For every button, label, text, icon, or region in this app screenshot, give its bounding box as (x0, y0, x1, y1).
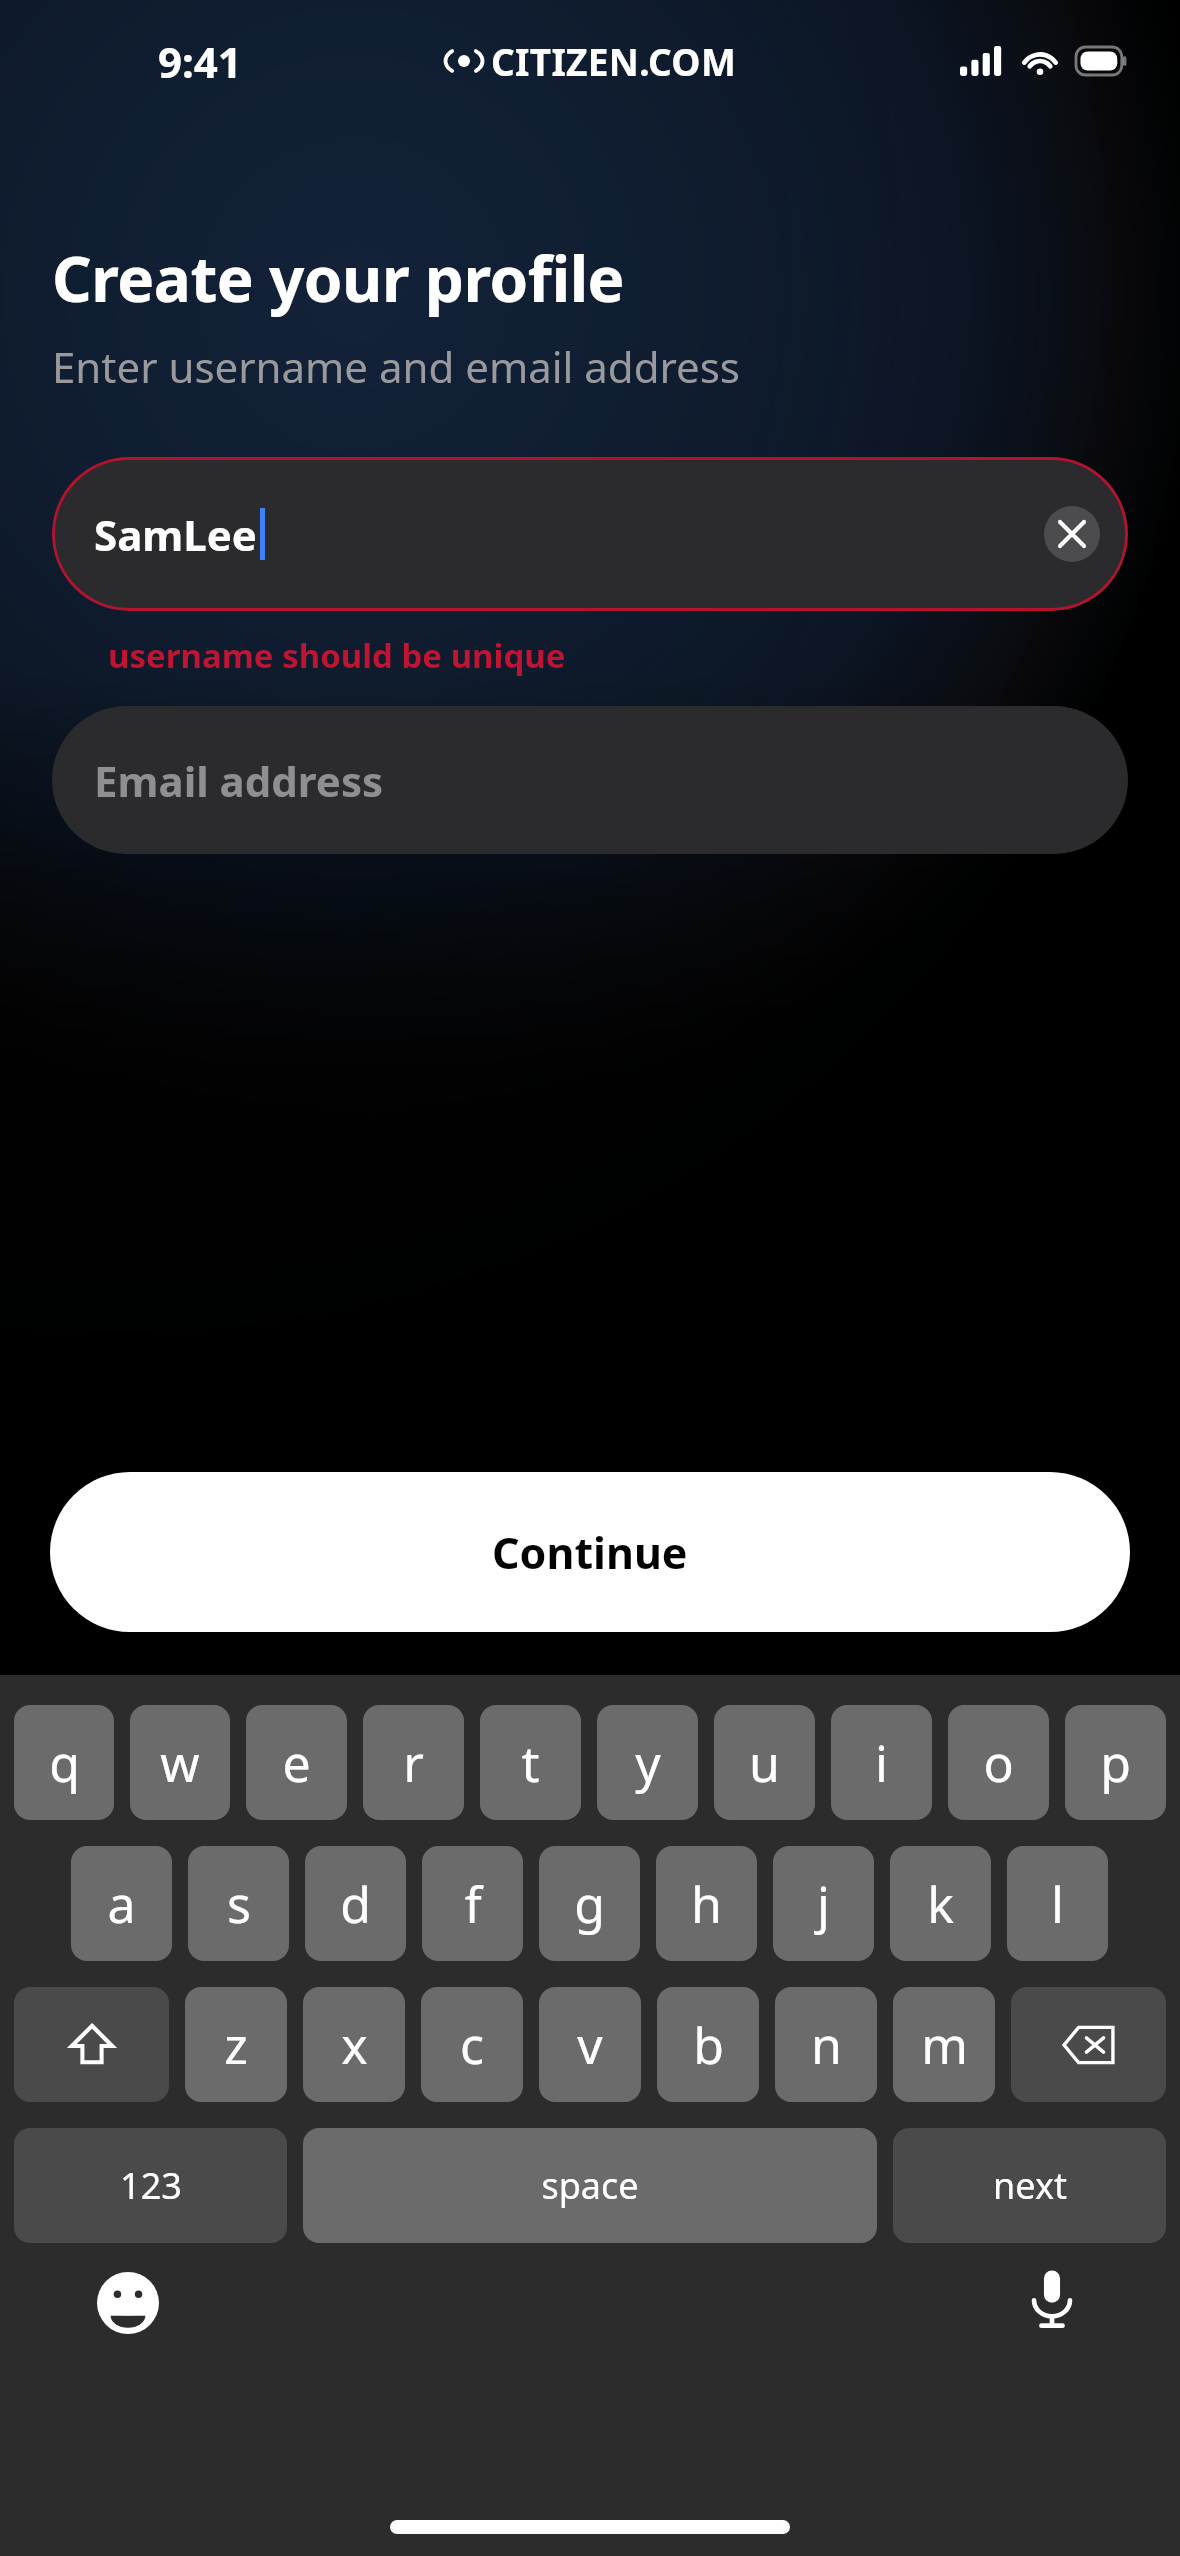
staticText: 9:41 (158, 33, 242, 90)
button[interactable]: z (185, 1987, 287, 2102)
staticText: Enter username and email address (52, 338, 740, 395)
button[interactable]: g (539, 1846, 640, 1961)
button[interactable]: 123 (14, 2128, 287, 2243)
staticText: b (693, 2011, 724, 2079)
staticText: next (993, 2161, 1067, 2210)
button[interactable]: y (597, 1705, 698, 1820)
staticText: space (541, 2161, 639, 2210)
staticText: Email address (94, 752, 384, 809)
staticText: z (224, 2011, 248, 2079)
button[interactable]: SamLee (52, 457, 1128, 611)
button[interactable]: o (948, 1705, 1049, 1820)
staticText: k (927, 1870, 954, 1938)
button[interactable]: Emoji (92, 2267, 164, 2339)
button[interactable]: u (714, 1705, 815, 1820)
staticText: h (691, 1870, 722, 1938)
staticText: n (811, 2011, 842, 2079)
staticText: l (1051, 1870, 1064, 1938)
staticText: s (227, 1870, 251, 1938)
button[interactable]: p (1065, 1705, 1166, 1820)
button[interactable]: space (303, 2128, 877, 2243)
staticText: e (282, 1729, 311, 1797)
staticText: username should be unique (108, 633, 566, 678)
staticText: m (921, 2011, 968, 2079)
staticText: Create your profile (52, 236, 625, 320)
button[interactable]: k (890, 1846, 991, 1961)
staticText: t (521, 1729, 540, 1797)
button[interactable]: f (422, 1846, 523, 1961)
button[interactable]: a (71, 1846, 172, 1961)
button[interactable]: h (656, 1846, 757, 1961)
button[interactable]: d (305, 1846, 406, 1961)
staticText: 123 (120, 2161, 182, 2210)
button[interactable]: m (893, 1987, 995, 2102)
button[interactable]: Shift (14, 1987, 169, 2102)
button[interactable]: c (421, 1987, 523, 2102)
button[interactable]: q (14, 1705, 114, 1820)
staticText: u (749, 1729, 780, 1797)
staticText: SamLee (94, 506, 257, 563)
button[interactable]: n (775, 1987, 877, 2102)
button[interactable]: s (188, 1846, 289, 1961)
staticText: o (983, 1729, 1014, 1797)
button[interactable]: Backspace (1011, 1987, 1166, 2102)
staticText: w (160, 1729, 200, 1797)
button[interactable]: Voice input (1016, 2263, 1088, 2335)
staticText: q (49, 1729, 80, 1797)
staticText: y (635, 1729, 661, 1797)
button[interactable]: t (480, 1705, 581, 1820)
button[interactable]: i (831, 1705, 932, 1820)
button[interactable]: x (303, 1987, 405, 2102)
staticText: d (340, 1870, 371, 1938)
button[interactable]: v (539, 1987, 641, 2102)
staticText: x (341, 2011, 368, 2079)
staticText: v (577, 2011, 603, 2079)
staticText: Continue (492, 1523, 688, 1582)
staticText: CITIZEN.COM (491, 36, 737, 86)
button[interactable]: r (363, 1705, 464, 1820)
staticText: f (464, 1870, 482, 1938)
button[interactable]: w (130, 1705, 230, 1820)
staticText: i (875, 1729, 888, 1797)
button[interactable]: Clear username (1044, 506, 1100, 562)
staticText: j (817, 1870, 830, 1938)
staticText: r (403, 1729, 424, 1797)
staticText: g (574, 1870, 605, 1938)
button[interactable]: Email address (52, 706, 1128, 854)
button[interactable]: b (657, 1987, 759, 2102)
button[interactable]: j (773, 1846, 874, 1961)
staticText: a (107, 1870, 136, 1938)
button[interactable]: Continue (50, 1472, 1130, 1632)
button[interactable]: l (1007, 1846, 1108, 1961)
staticText: c (460, 2011, 484, 2079)
button[interactable]: next (893, 2128, 1166, 2243)
button[interactable]: e (246, 1705, 347, 1820)
staticText: p (1100, 1729, 1131, 1797)
